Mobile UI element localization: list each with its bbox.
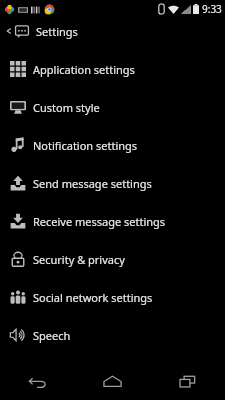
staticText: Security & privacy <box>33 252 125 267</box>
staticText: Social network settings <box>33 290 153 305</box>
button[interactable]: Social network settings <box>0 278 225 316</box>
staticText: Speech <box>33 328 71 343</box>
staticText: Notification settings <box>33 138 138 153</box>
button[interactable]: Settings <box>0 18 225 44</box>
button[interactable]: Home <box>75 362 150 400</box>
button[interactable]: Speech <box>0 316 225 354</box>
button[interactable]: Send message settings <box>0 164 225 202</box>
staticText: Receive message settings <box>33 214 166 229</box>
button[interactable]: Recent apps <box>150 362 225 400</box>
staticText: Custom style <box>33 100 100 115</box>
staticText: Application settings <box>33 62 135 77</box>
staticText: Send message settings <box>33 176 152 191</box>
button[interactable]: Application settings <box>0 50 225 88</box>
button[interactable]: Notification settings <box>0 126 225 164</box>
button[interactable]: Security & privacy <box>0 240 225 278</box>
button[interactable]: Back <box>0 362 75 400</box>
staticText: Settings <box>36 24 78 39</box>
button[interactable]: Custom style <box>0 88 225 126</box>
button[interactable]: Receive message settings <box>0 202 225 240</box>
staticText: 9:33 <box>202 2 222 16</box>
